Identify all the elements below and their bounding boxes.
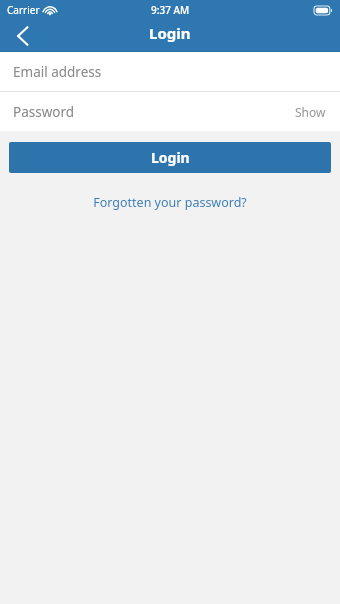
staticText: Forgotten your password?: [93, 194, 247, 211]
button[interactable]: Show: [281, 98, 340, 126]
staticText: Login: [151, 148, 190, 167]
staticText: Password: [13, 103, 75, 121]
button[interactable]: Back: [6, 20, 38, 52]
button[interactable]: Forgotten your password?: [83, 191, 257, 214]
button[interactable]: Password: [0, 92, 340, 131]
staticText: Email address: [13, 63, 102, 81]
button[interactable]: Login: [9, 142, 331, 173]
staticText: Carrier: [7, 3, 40, 17]
button[interactable]: Email address: [0, 52, 340, 91]
staticText: Login: [149, 23, 191, 43]
staticText: Show: [295, 104, 326, 120]
staticText: 9:37 AM: [151, 3, 190, 17]
